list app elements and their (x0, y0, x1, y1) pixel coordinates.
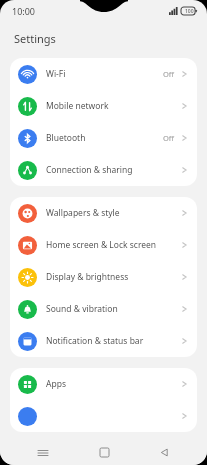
staticText: Connection & sharing (46, 164, 181, 176)
staticText: Off (163, 69, 175, 79)
button[interactable]: Recent apps (26, 440, 60, 465)
staticText: Apps (46, 378, 181, 390)
other: Wallpapers and style (18, 204, 37, 223)
other: Mobile network (18, 97, 37, 116)
button[interactable]: Bluetooth (10, 122, 197, 154)
staticText: 10:00 (12, 5, 36, 17)
other: Home screen and Lock screen (18, 236, 37, 255)
button[interactable]: Sound and vibration (10, 293, 197, 325)
other: Wi-Fi (18, 65, 37, 84)
staticText: 100 (185, 8, 194, 15)
staticText: Display & brightness (46, 271, 181, 283)
button[interactable]: Home screen and Lock screen (10, 229, 197, 261)
button[interactable]: Back (147, 440, 181, 465)
staticText: Mobile network (46, 100, 181, 112)
staticText: Notification & status bar (46, 335, 181, 347)
other: Connection and sharing (18, 161, 37, 180)
staticText: Home screen & Lock screen (46, 239, 181, 251)
staticText: Sound & vibration (46, 303, 181, 315)
other: Apps (18, 375, 37, 394)
button[interactable]: Wallpapers and style (10, 197, 197, 229)
staticText: Off (163, 133, 175, 143)
button[interactable]: Apps (10, 368, 197, 400)
button[interactable]: Notification and status bar (10, 325, 197, 357)
button[interactable]: Home (87, 440, 121, 465)
other: Display and brightness (18, 268, 37, 287)
other: Sound and vibration (18, 300, 37, 319)
button[interactable]: Mobile network (10, 90, 197, 122)
other: Bluetooth (18, 129, 37, 148)
button[interactable]: Display and brightness (10, 261, 197, 293)
button[interactable]: Wi-Fi (10, 58, 197, 90)
staticText: Wi-Fi (46, 68, 163, 80)
staticText: Bluetooth (46, 132, 163, 144)
staticText: Settings (14, 31, 56, 46)
button[interactable]: Connection and sharing (10, 154, 197, 186)
other: Notification and status bar (18, 332, 37, 351)
button[interactable] (10, 400, 197, 432)
staticText: Wallpapers & style (46, 207, 181, 219)
